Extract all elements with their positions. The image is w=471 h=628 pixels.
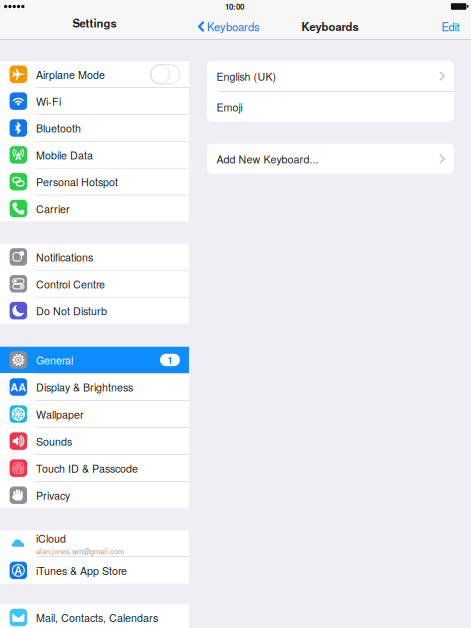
staticText: iCloud	[36, 530, 66, 546]
button[interactable]: Carrier	[0, 195, 189, 222]
button[interactable]: iTunes & App Store	[0, 557, 189, 584]
staticText: Bluetooth	[36, 120, 81, 136]
button[interactable]: Touch ID & Passcode	[0, 455, 189, 481]
staticText: alan.jones.wm@gmail.com	[36, 546, 124, 556]
staticText: Touch ID & Passcode	[36, 460, 138, 476]
staticText: Edit	[441, 18, 459, 34]
button[interactable]: Add New Keyboard...	[207, 144, 454, 174]
staticText: Sounds	[36, 433, 72, 449]
button[interactable]: Mobile Data	[0, 142, 189, 168]
staticText: Display & Brightness	[36, 379, 133, 395]
staticText: Mobile Data	[36, 147, 93, 162]
staticText: Carrier	[36, 201, 70, 216]
staticText: Notifications	[36, 249, 93, 265]
button[interactable]: Keyboards	[189, 14, 266, 39]
button[interactable]: Airplane Mode	[0, 61, 189, 87]
button[interactable]: Edit	[433, 14, 471, 39]
staticText: Wallpaper	[36, 406, 84, 422]
button[interactable]: Personal Hotspot	[0, 169, 189, 195]
button[interactable]: AA	[0, 374, 189, 400]
staticText: 1	[167, 353, 172, 367]
staticText: Do Not Disturb	[36, 303, 107, 318]
staticText: General	[36, 352, 73, 368]
button[interactable]: Privacy	[0, 482, 189, 508]
staticText: Add New Keyboard...	[217, 151, 319, 166]
button[interactable]: Control Centre	[0, 271, 189, 297]
staticText: Airplane Mode	[36, 67, 105, 82]
staticText: English (UK)	[217, 68, 277, 84]
button[interactable]: Notifications	[0, 244, 189, 270]
button[interactable]: General	[0, 347, 189, 373]
staticText: Mail, Contacts, Calendars	[36, 610, 158, 625]
staticText: Emoji	[217, 99, 243, 114]
staticText: Keyboards	[301, 18, 358, 34]
staticText: Privacy	[36, 488, 70, 503]
button[interactable]: Sounds	[0, 428, 189, 454]
button[interactable]: Do Not Disturb	[0, 297, 189, 324]
button[interactable]: Wallpaper	[0, 401, 189, 427]
button[interactable]: Emoji	[207, 92, 454, 122]
button[interactable]: English (UK)	[207, 61, 454, 91]
staticText: Control Centre	[36, 276, 105, 291]
staticText: AA	[10, 379, 26, 395]
staticText: Wi-Fi	[36, 93, 61, 109]
staticText: Settings	[72, 15, 116, 31]
staticText: Personal Hotspot	[36, 174, 118, 189]
staticText: Keyboards	[207, 18, 260, 34]
button[interactable]: Bluetooth	[0, 115, 189, 141]
button[interactable]: Wi-Fi	[0, 88, 189, 114]
button[interactable]: iCloud	[0, 530, 189, 556]
button[interactable]: Mail, Contacts, Calendars	[0, 604, 189, 628]
staticText: 10:00	[225, 1, 244, 12]
staticText: iTunes & App Store	[36, 563, 127, 578]
